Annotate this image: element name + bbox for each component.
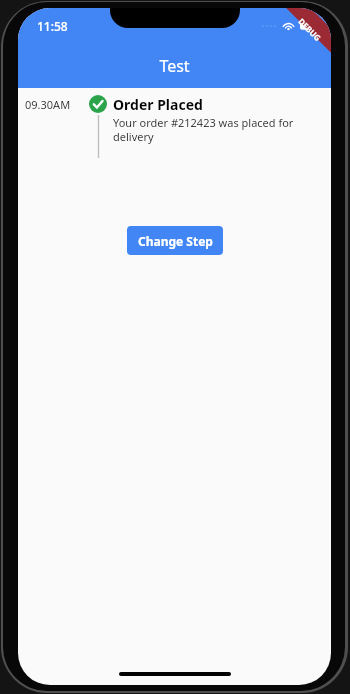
staticText: Test bbox=[159, 55, 190, 77]
staticText: Change Step bbox=[138, 233, 213, 249]
staticText: Your order #212423 was placed for delive… bbox=[113, 115, 321, 144]
staticText: 09.30AM bbox=[25, 97, 87, 112]
other: Wi-Fi bbox=[282, 21, 295, 31]
staticText: 11:58 bbox=[37, 18, 68, 34]
button[interactable]: Change Step bbox=[127, 226, 223, 255]
staticText: Order Placed bbox=[113, 95, 203, 114]
staticText: DEBUG bbox=[296, 16, 324, 43]
other: Battery bbox=[300, 21, 320, 31]
